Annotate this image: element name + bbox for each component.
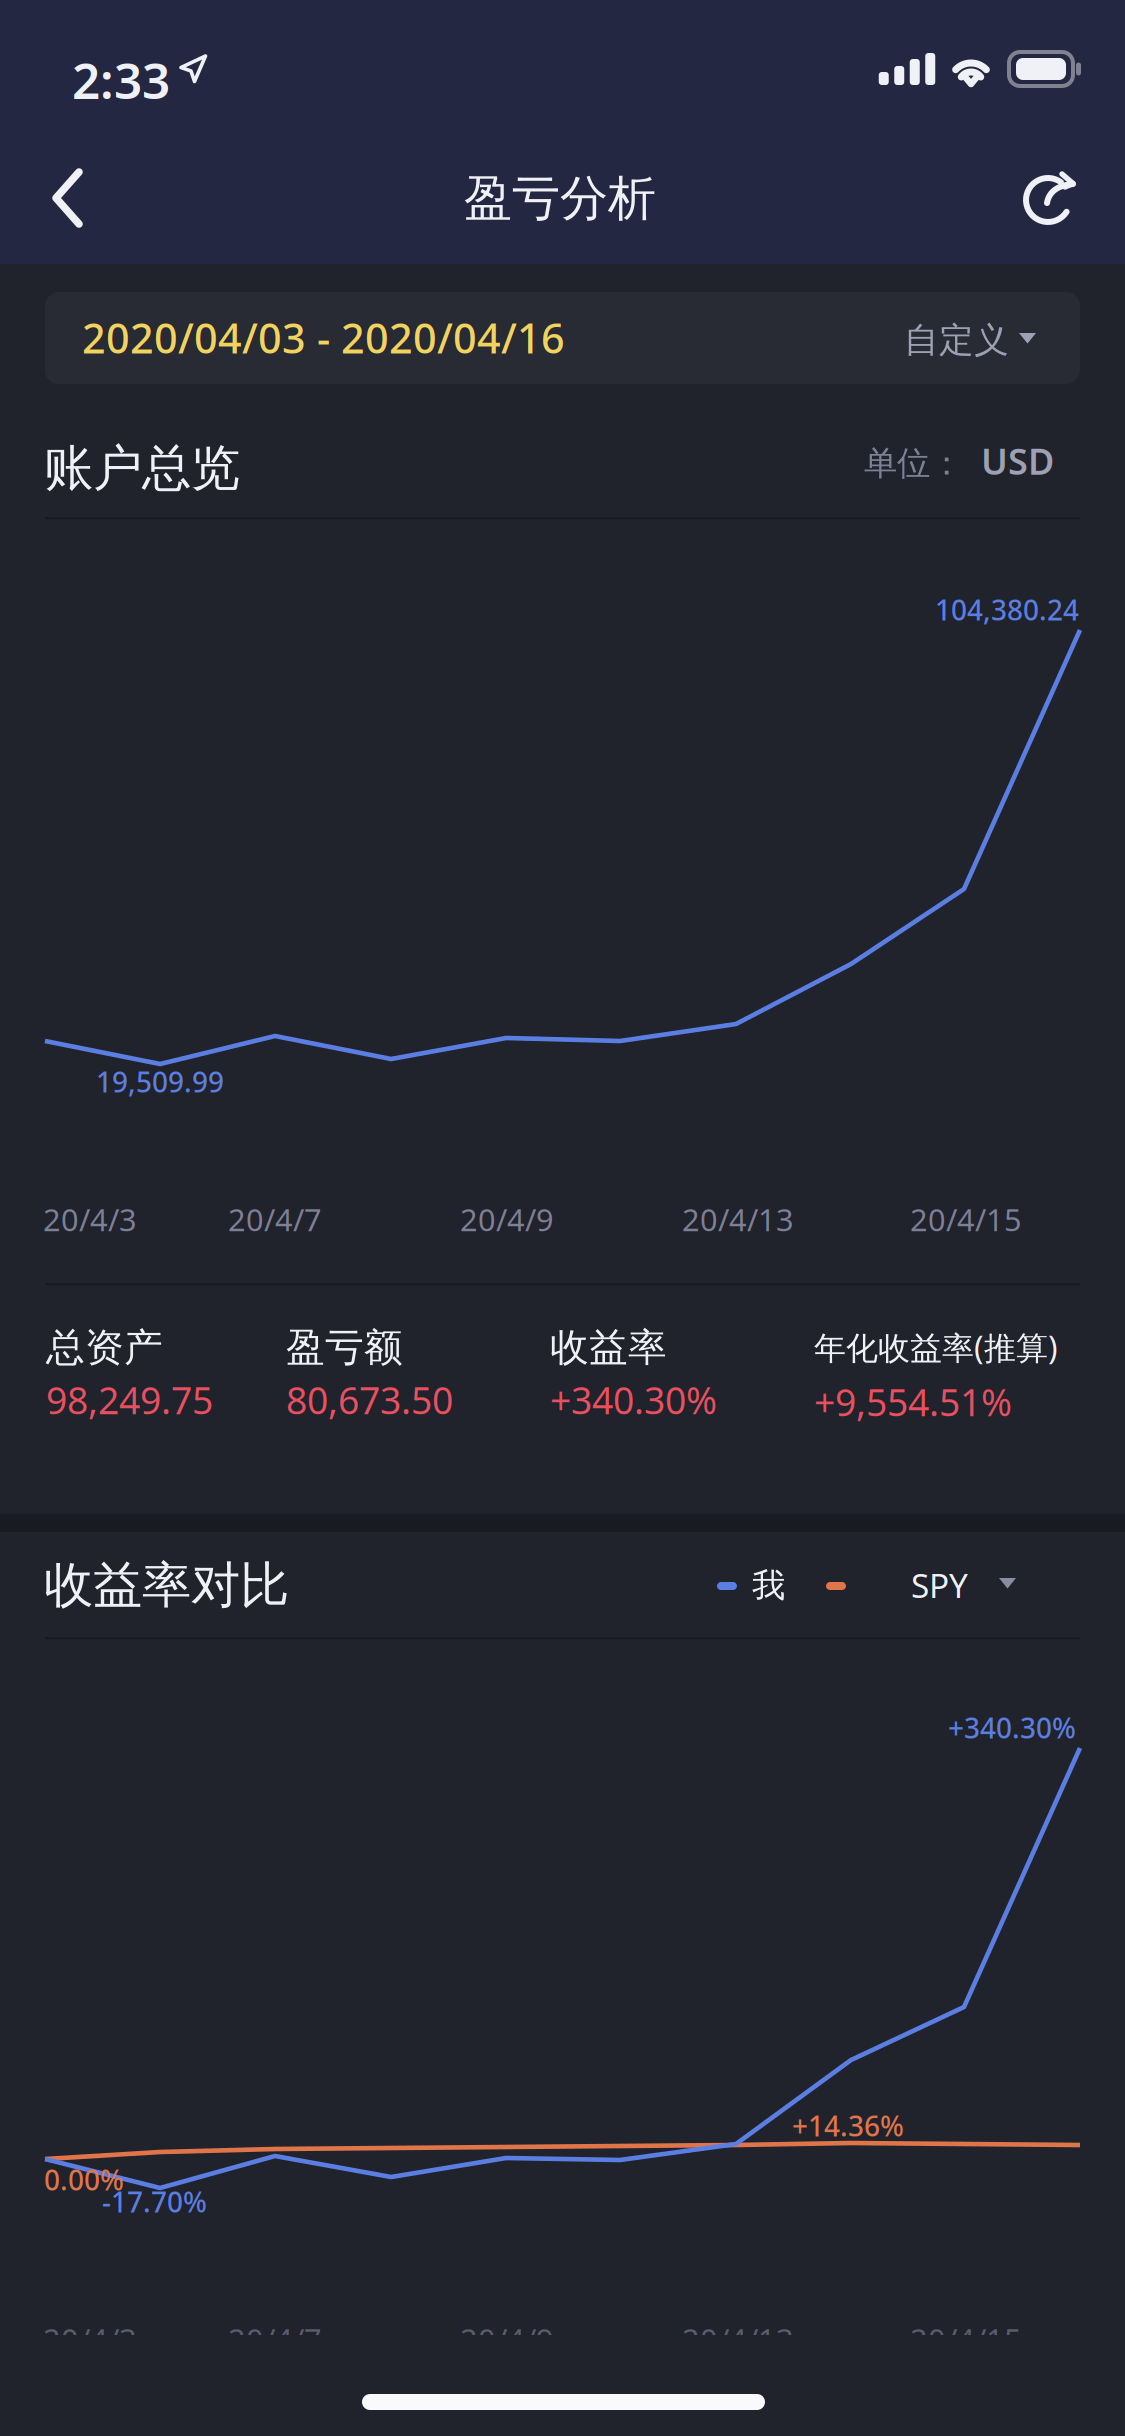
staticText: 2:33	[72, 47, 170, 112]
button[interactable]: 2020/04/03 - 2020/04/16	[45, 292, 1080, 384]
staticText: 0.00%	[44, 2161, 124, 2198]
staticText: 20/4/15	[910, 2319, 1022, 2360]
staticText: 我	[752, 1565, 785, 1606]
staticText: +340.30%	[948, 1709, 1076, 1746]
staticText: 98,249.75	[46, 1375, 213, 1425]
staticText: 20/4/15	[910, 1199, 1022, 1240]
staticText: 盈亏额	[286, 1324, 403, 1371]
staticText: -17.70%	[102, 2183, 207, 2220]
staticText: 20/4/13	[682, 2319, 794, 2360]
staticText: 20/4/7	[228, 2319, 322, 2360]
button[interactable]: Share	[995, 132, 1115, 264]
staticText: 20/4/3	[43, 1199, 137, 1240]
staticText: 收益率	[550, 1324, 667, 1371]
staticText: +9,554.51%	[814, 1377, 1012, 1427]
staticText: 20/4/3	[43, 2319, 137, 2360]
staticText: 年化收益率(推算)	[814, 1326, 1058, 1368]
staticText: +14.36%	[792, 2107, 904, 2144]
staticText: 80,673.50	[286, 1375, 453, 1425]
staticText: 总资产	[46, 1324, 163, 1371]
staticText: 20/4/9	[460, 2319, 554, 2360]
staticText: +340.30%	[550, 1375, 717, 1425]
staticText: 盈亏分析	[464, 169, 656, 228]
staticText: 收益率对比	[44, 1555, 289, 1616]
staticText: SPY	[911, 1563, 968, 1607]
staticText: 20/4/7	[228, 1199, 322, 1240]
button[interactable]: Back	[10, 132, 130, 264]
staticText: 19,509.99	[96, 1063, 224, 1100]
staticText: 自定义	[904, 319, 1009, 362]
staticText: 104,380.24	[935, 591, 1079, 628]
staticText: 单位：	[864, 443, 963, 484]
staticText: 20/4/13	[682, 1199, 794, 1240]
staticText: 20/4/9	[460, 1199, 554, 1240]
staticText: USD	[981, 437, 1054, 485]
staticText: 账户总览	[44, 438, 240, 499]
staticText: 2020/04/03 - 2020/04/16	[82, 310, 565, 365]
button[interactable]: SPY	[911, 1552, 1036, 1624]
